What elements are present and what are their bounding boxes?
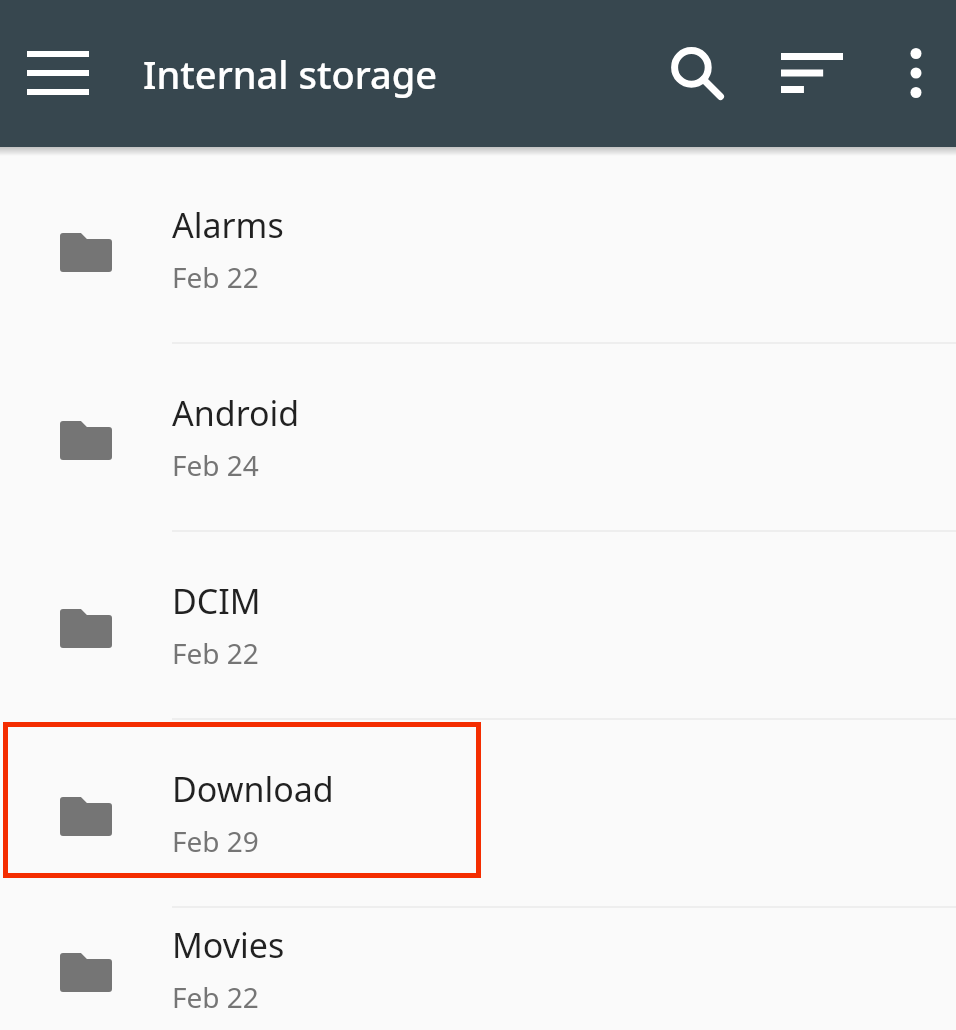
staticText: Download	[172, 766, 334, 812]
button[interactable]: DCIM	[0, 532, 956, 720]
button[interactable]: Search	[655, 32, 739, 114]
staticText: Feb 29	[172, 822, 259, 860]
button[interactable]: Android	[0, 344, 956, 532]
staticText: Movies	[172, 922, 285, 968]
staticText: Alarms	[172, 202, 284, 248]
button[interactable]: Open navigation drawer	[14, 38, 102, 108]
staticText: Android	[172, 390, 300, 436]
staticText: Feb 24	[172, 446, 259, 484]
button[interactable]: Alarms	[0, 156, 956, 344]
staticText: DCIM	[172, 578, 261, 624]
staticText: Internal storage	[143, 48, 438, 100]
button[interactable]: Movies	[0, 908, 956, 1030]
button[interactable]: Download	[0, 720, 956, 908]
staticText: Feb 22	[172, 634, 259, 672]
button[interactable]: Sort	[772, 34, 852, 112]
staticText: Feb 22	[172, 258, 259, 296]
staticText: Feb 22	[172, 978, 259, 1016]
button[interactable]: More options	[884, 34, 948, 112]
